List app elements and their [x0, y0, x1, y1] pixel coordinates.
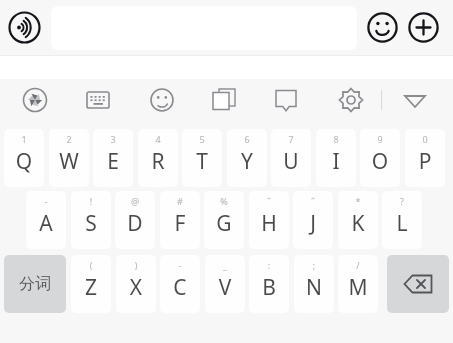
button[interactable]: Expression	[147, 85, 177, 115]
staticText: J	[293, 209, 333, 238]
staticText: /	[338, 259, 378, 271]
button[interactable]: !	[71, 191, 111, 249]
button[interactable]: -	[26, 191, 66, 249]
button[interactable]: ;	[294, 255, 334, 313]
staticText: N	[294, 273, 334, 302]
button[interactable]: -	[160, 255, 200, 313]
staticText: 3	[93, 133, 133, 145]
button[interactable]: 0	[405, 129, 445, 187]
staticText: C	[160, 273, 200, 302]
staticText: ˝	[249, 195, 289, 207]
button[interactable]: ?	[382, 191, 422, 249]
staticText: 4	[138, 133, 178, 145]
staticText: 6	[227, 133, 267, 145]
staticText: ˝	[293, 195, 333, 207]
staticText: Z	[71, 273, 111, 302]
staticText: K	[338, 209, 378, 238]
staticText: D	[115, 209, 155, 238]
staticText: 8	[316, 133, 356, 145]
staticText: 5	[182, 133, 222, 145]
staticText: A	[26, 209, 66, 238]
button[interactable]: Translate	[208, 85, 238, 115]
staticText: _	[205, 259, 245, 271]
button[interactable]: Voice input	[8, 11, 41, 44]
button[interactable]: Add	[408, 12, 439, 43]
button[interactable]: 8	[316, 129, 356, 187]
staticText: 7	[271, 133, 311, 145]
button[interactable]: (	[71, 255, 111, 313]
button[interactable]: 6	[227, 129, 267, 187]
button[interactable]: Settings	[336, 85, 366, 115]
staticText: !	[71, 195, 111, 207]
staticText: B	[249, 273, 289, 302]
button[interactable]: 1	[4, 129, 44, 187]
staticText: H	[249, 209, 289, 238]
staticText: 0	[405, 133, 445, 145]
button[interactable]: Backspace	[387, 255, 449, 313]
staticText: E	[93, 147, 133, 176]
button[interactable]: @	[115, 191, 155, 249]
staticText: F	[160, 209, 200, 238]
button[interactable]: /	[338, 255, 378, 313]
button[interactable]: :	[249, 255, 289, 313]
staticText: )	[116, 259, 156, 271]
staticText: 1	[4, 133, 44, 145]
staticText: 分词	[19, 274, 51, 294]
button[interactable]: *	[338, 191, 378, 249]
button[interactable]: Hide keyboard	[400, 85, 430, 115]
button[interactable]: ˝	[249, 191, 289, 249]
staticText: O	[360, 147, 400, 176]
staticText: W	[49, 147, 89, 176]
staticText: L	[382, 209, 422, 238]
staticText: T	[182, 147, 222, 176]
staticText: -	[26, 195, 66, 207]
button[interactable]: _	[205, 255, 245, 313]
staticText: (	[71, 259, 111, 271]
button[interactable]: 3	[93, 129, 133, 187]
button[interactable]: 7	[271, 129, 311, 187]
staticText: X	[116, 273, 156, 302]
staticText: R	[138, 147, 178, 176]
staticText: ?	[382, 195, 422, 207]
button[interactable]: 9	[360, 129, 400, 187]
staticText: 9	[360, 133, 400, 145]
staticText: U	[271, 147, 311, 176]
button[interactable]: )	[116, 255, 156, 313]
staticText: #	[160, 195, 200, 207]
staticText: V	[205, 273, 245, 302]
button[interactable]: %	[204, 191, 244, 249]
staticText: P	[405, 147, 445, 176]
button[interactable]: #	[160, 191, 200, 249]
staticText: :	[249, 259, 289, 271]
staticText: S	[71, 209, 111, 238]
button[interactable]: Theme	[20, 85, 50, 115]
staticText: G	[204, 209, 244, 238]
button[interactable]: Emoji	[367, 12, 398, 43]
button[interactable]: 2	[49, 129, 89, 187]
staticText: M	[338, 273, 378, 302]
staticText: Y	[227, 147, 267, 176]
button[interactable]: ˝	[293, 191, 333, 249]
staticText: *	[338, 195, 378, 207]
button[interactable]: 分词	[4, 255, 66, 313]
button[interactable]: Phrases	[271, 85, 301, 115]
staticText: I	[316, 147, 356, 176]
staticText: @	[115, 195, 155, 207]
button[interactable]: 5	[182, 129, 222, 187]
button[interactable]: 4	[138, 129, 178, 187]
staticText: Q	[4, 147, 44, 176]
staticText: 2	[49, 133, 89, 145]
button[interactable]: Keyboard	[83, 85, 113, 115]
staticText: %	[204, 195, 244, 207]
staticText: -	[160, 259, 200, 271]
staticText: ;	[294, 259, 334, 271]
